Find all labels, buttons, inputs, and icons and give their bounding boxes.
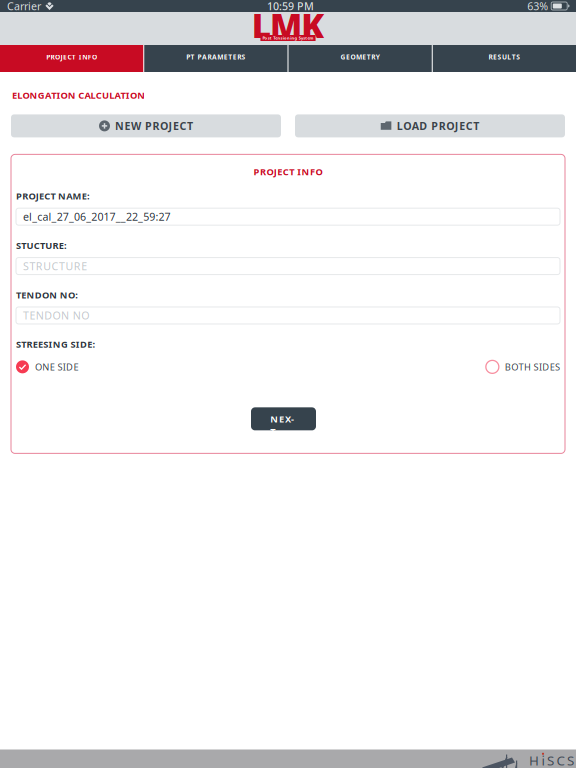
staticText: STRUCTURE [23, 259, 87, 273]
button[interactable]: PT PARAMETERS [144, 45, 287, 72]
button[interactable]: RESULTS [433, 45, 576, 72]
staticText: Carrier [7, 0, 41, 13]
staticText: NEXT [270, 413, 297, 425]
button[interactable]: LOAD PROJECT [295, 114, 565, 137]
staticText: PROJECT NAME: [16, 190, 90, 202]
staticText: RESULTS [488, 53, 520, 61]
staticText: el_cal_27_06_2017__22_59:27 [23, 210, 171, 224]
staticText: ELONGATION CALCULATION [12, 89, 145, 101]
staticText: S [567, 751, 574, 768]
staticText: LMK [252, 3, 324, 47]
staticText: 63% [527, 0, 548, 13]
staticText: PROJECT INFO [46, 53, 97, 61]
staticText: STUCTURE: [16, 239, 67, 252]
button[interactable]: PROJECT INFO [0, 45, 143, 72]
staticText: S [547, 751, 554, 768]
staticText: PT PARAMETERS [186, 53, 246, 61]
staticText: Post Tensioning System [262, 35, 314, 41]
staticText: ONE SIDE [35, 361, 78, 373]
staticText: PROJECT INFO [253, 165, 322, 178]
button[interactable]: NEW PROJECT [11, 114, 281, 137]
staticText: 10:59 PM [267, 0, 314, 13]
staticText: GEOMETRY [340, 53, 380, 61]
staticText: BOTH SIDES [505, 361, 560, 373]
staticText: NEW PROJECT [115, 119, 193, 133]
button[interactable]: BOTH SIDES [486, 360, 560, 373]
staticText: i [541, 751, 544, 768]
staticText: TENDON NO: [16, 289, 78, 301]
staticText: C [556, 751, 564, 768]
staticText: LOAD PROJECT [397, 119, 479, 133]
button[interactable]: GEOMETRY [288, 45, 432, 72]
staticText: STREESING SIDE: [16, 338, 95, 350]
staticText: TENDON NO [23, 308, 89, 323]
button[interactable]: NEXT [251, 407, 316, 430]
button[interactable]: ONE SIDE [16, 360, 78, 373]
staticText: H [529, 751, 539, 768]
